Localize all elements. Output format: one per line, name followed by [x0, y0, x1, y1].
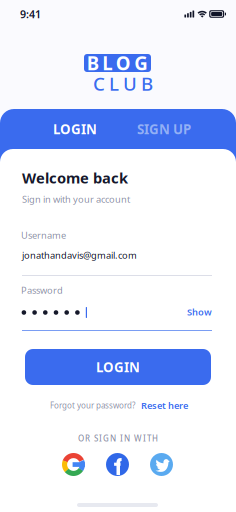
button[interactable]: LOGIN: [25, 349, 211, 385]
button[interactable]: LOGIN: [28, 116, 122, 142]
staticText: Reset here: [141, 399, 188, 412]
button[interactable]: Reset here: [141, 399, 188, 412]
staticText: Forgot your password?: [50, 400, 135, 411]
button[interactable]: SIGN UP: [117, 116, 211, 142]
staticText: CLUB: [93, 71, 153, 96]
button[interactable]: Sign in with Google: [62, 453, 85, 476]
staticText: BLOG: [87, 51, 148, 75]
staticText: Show: [187, 306, 212, 318]
staticText: Password: [21, 284, 63, 296]
button[interactable]: Show: [186, 307, 212, 317]
staticText: LOGIN: [96, 358, 140, 376]
button[interactable]: Sign in with Facebook: [106, 453, 129, 476]
staticText: SIGN UP: [137, 120, 191, 138]
staticText: 9:41: [20, 7, 41, 21]
staticText: LOGIN: [53, 120, 97, 138]
button[interactable]: Sign in with Twitter: [150, 453, 173, 476]
staticText: OR SIGN IN WITH: [78, 433, 158, 444]
staticText: Welcome back: [22, 168, 128, 187]
staticText: Username: [21, 229, 66, 241]
staticText: Sign in with your account: [22, 193, 130, 205]
staticText: jonathandavis@gmail.com: [22, 249, 137, 261]
